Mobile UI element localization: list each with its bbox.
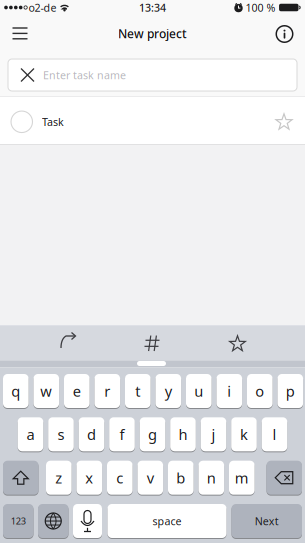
button[interactable]: 123 (3, 503, 33, 538)
staticText: h (178, 425, 187, 444)
button[interactable]: space (107, 503, 226, 538)
staticText: l (272, 425, 276, 444)
staticText: x (85, 468, 93, 487)
button[interactable]: f (109, 417, 135, 452)
button[interactable]: p (277, 373, 303, 408)
button[interactable]: v (137, 460, 163, 495)
staticText: z (55, 468, 62, 487)
button[interactable]: Favorite (217, 328, 257, 358)
staticText: i (227, 381, 231, 401)
button[interactable]: Task (0, 98, 250, 145)
staticText: e (73, 381, 81, 401)
staticText: c (116, 468, 123, 487)
button[interactable]: l (262, 417, 287, 452)
staticText: Task (42, 115, 64, 129)
button[interactable]: q (3, 373, 29, 408)
staticText: m (235, 468, 249, 487)
button[interactable]: e (64, 373, 90, 408)
button[interactable]: k (231, 417, 257, 452)
button[interactable]: Enter task name (8, 59, 297, 91)
staticText: f (119, 425, 124, 444)
button[interactable]: y (155, 373, 181, 408)
staticText: d (87, 425, 96, 444)
button[interactable]: c (107, 460, 133, 495)
button[interactable]: n (198, 460, 224, 495)
button[interactable]: Project info (269, 19, 299, 49)
staticText: space (152, 514, 181, 528)
button[interactable]: z (46, 460, 72, 495)
button[interactable]: Add tag (132, 328, 172, 358)
staticText: o2-de (28, 0, 56, 15)
staticText: k (240, 425, 248, 444)
button[interactable]: Mark as favorite (264, 98, 304, 145)
staticText: Next (255, 514, 279, 528)
button[interactable]: Redo (48, 327, 88, 357)
button[interactable]: j (201, 417, 226, 452)
button[interactable]: Menu (3, 16, 37, 50)
button[interactable]: Next (231, 503, 302, 538)
staticText: o (255, 381, 264, 401)
staticText: New project (118, 25, 187, 41)
button[interactable]: o (247, 373, 273, 408)
button[interactable]: m (229, 460, 255, 495)
staticText: 100 % (245, 0, 275, 15)
button[interactable]: s (48, 417, 74, 452)
staticText: y (165, 381, 172, 401)
staticText: 13:34 (139, 0, 166, 15)
button[interactable]: Next keyboard (38, 503, 68, 538)
staticText: p (286, 381, 295, 401)
button[interactable]: t (125, 373, 151, 408)
button[interactable]: w (33, 373, 59, 408)
staticText: n (207, 468, 216, 487)
button[interactable]: r (94, 373, 120, 408)
staticText: a (26, 425, 34, 444)
button[interactable]: Delete (266, 460, 302, 495)
staticText: j (211, 425, 215, 444)
staticText: r (104, 381, 110, 401)
button[interactable]: i (216, 373, 242, 408)
button[interactable]: b (168, 460, 194, 495)
staticText: b (176, 468, 185, 487)
staticText: u (194, 381, 203, 401)
button[interactable]: g (140, 417, 165, 452)
button[interactable]: Shift (3, 460, 38, 495)
staticText: w (40, 381, 52, 401)
staticText: t (135, 381, 140, 401)
staticText: 123 (11, 515, 26, 527)
staticText: g (148, 425, 157, 444)
button[interactable]: Dictate (73, 503, 102, 538)
staticText: v (147, 468, 154, 487)
staticText: s (57, 425, 64, 444)
button[interactable]: a (18, 417, 43, 452)
button[interactable]: u (186, 373, 212, 408)
button[interactable]: h (170, 417, 196, 452)
staticText: q (11, 381, 20, 401)
button[interactable]: x (76, 460, 102, 495)
button[interactable]: d (79, 417, 104, 452)
staticText: Enter task name (43, 68, 126, 82)
